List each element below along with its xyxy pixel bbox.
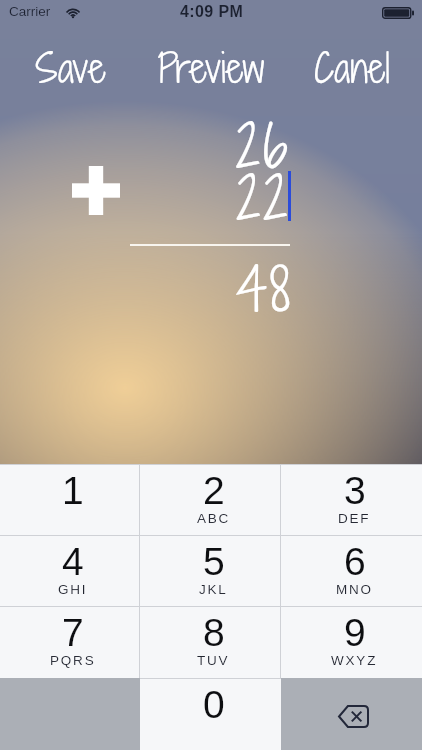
- staticText: WXYZ: [331, 653, 378, 668]
- staticText: DEF: [338, 511, 371, 526]
- button[interactable]: 4: [0, 535, 140, 606]
- staticText: 4:09 PM: [180, 3, 244, 21]
- staticText: 0: [203, 683, 225, 727]
- staticText: 4: [62, 540, 84, 584]
- staticText: GHI: [58, 582, 88, 597]
- button[interactable]: 3: [281, 464, 422, 535]
- staticText: Canel: [314, 41, 390, 89]
- staticText: 1: [62, 469, 84, 513]
- staticText: ABC: [197, 511, 231, 526]
- button[interactable]: 1: [0, 464, 140, 535]
- button[interactable]: Save: [0, 41, 140, 89]
- staticText: 48: [0, 247, 292, 330]
- button[interactable]: 6: [281, 535, 422, 606]
- staticText: 26: [0, 104, 290, 187]
- staticText: TUV: [197, 653, 230, 668]
- staticText: JKL: [199, 582, 228, 597]
- staticText: 9: [344, 611, 366, 655]
- staticText: 8: [203, 611, 225, 655]
- button[interactable]: Preview: [140, 41, 281, 89]
- staticText: 2: [203, 469, 225, 513]
- staticText: PQRS: [50, 653, 96, 668]
- staticText: Save: [35, 41, 106, 89]
- button[interactable]: 7: [0, 606, 140, 678]
- staticText: Preview: [157, 41, 265, 89]
- button[interactable]: 5: [140, 535, 281, 606]
- button[interactable]: 9: [281, 606, 422, 678]
- staticText: 5: [203, 540, 225, 584]
- staticText: 3: [344, 469, 366, 513]
- button[interactable]: 0: [140, 678, 281, 750]
- button[interactable]: 2: [140, 464, 281, 535]
- button[interactable]: 8: [140, 606, 281, 678]
- staticText: Carrier: [9, 4, 51, 19]
- staticText: MNO: [336, 582, 373, 597]
- button[interactable]: Canel: [281, 41, 422, 89]
- staticText: 6: [344, 540, 366, 584]
- staticText: 7: [62, 611, 84, 655]
- button[interactable]: Delete: [281, 678, 422, 750]
- staticText: 22: [0, 156, 290, 239]
